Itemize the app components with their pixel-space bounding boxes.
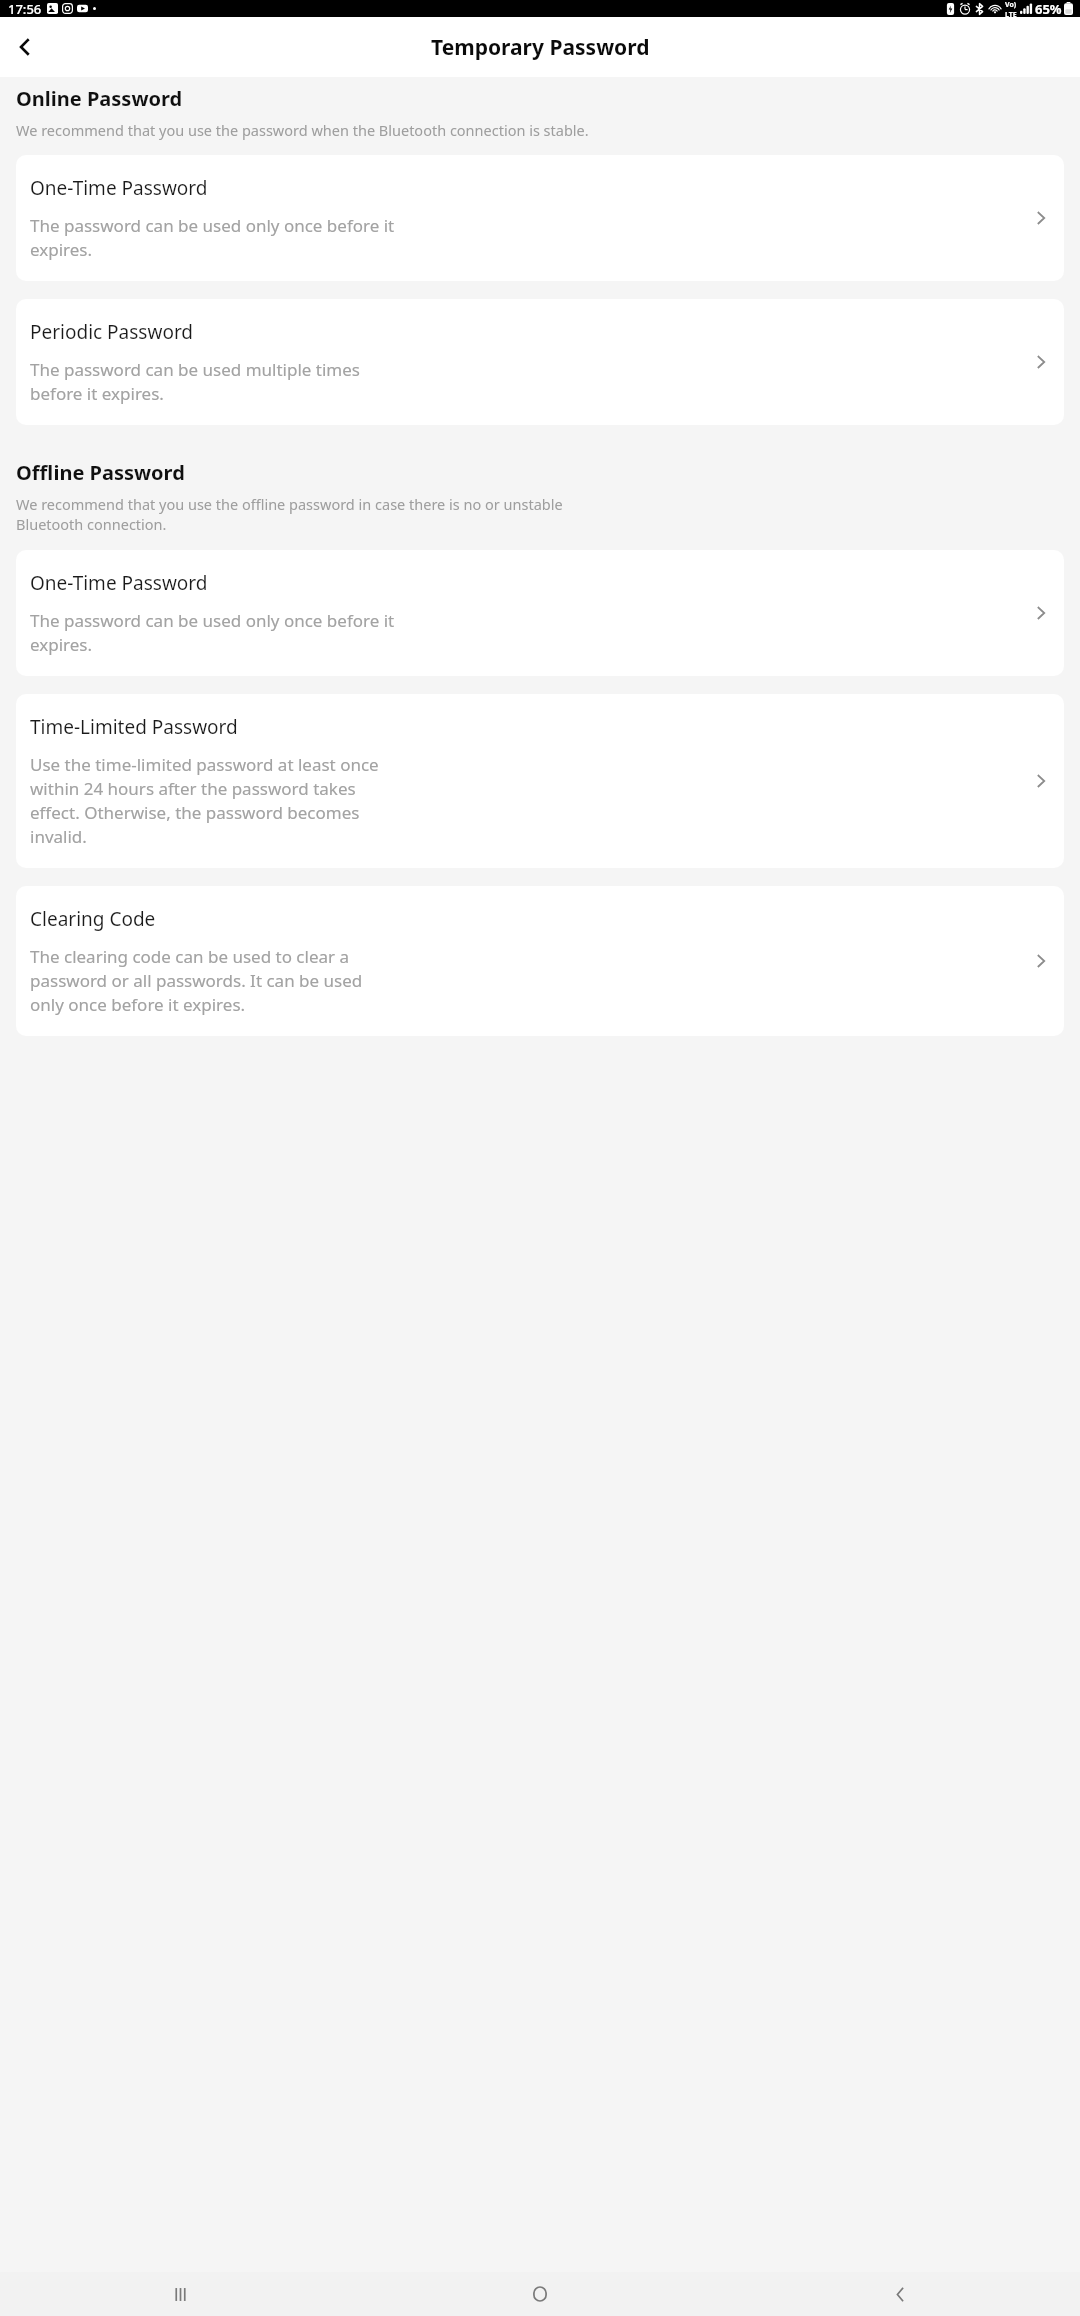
staticText: LTE	[1005, 10, 1017, 17]
button[interactable]: Recent apps	[152, 2272, 208, 2316]
button[interactable]: Back	[872, 2272, 928, 2316]
staticText: One-Time Password	[30, 570, 208, 596]
staticText: Time-Limited Password	[30, 714, 238, 740]
button[interactable]: One-Time Password	[16, 550, 1064, 676]
staticText: 17:56	[8, 0, 42, 17]
staticText: 65%	[1035, 0, 1062, 17]
staticText: Vo)	[1005, 0, 1017, 10]
staticText: Online Password	[16, 85, 183, 112]
staticText: We recommend that you use the offline pa…	[16, 494, 563, 534]
button[interactable]: Time-Limited Password	[16, 694, 1064, 868]
staticText: The clearing code can be used to clear a…	[30, 945, 363, 1016]
button[interactable]: Clearing Code	[16, 886, 1064, 1036]
staticText: The password can be used only once befor…	[30, 214, 395, 261]
staticText: Offline Password	[16, 459, 185, 486]
staticText: The password can be used only once befor…	[30, 609, 395, 656]
staticText: Periodic Password	[30, 319, 194, 345]
staticText: One-Time Password	[30, 175, 208, 201]
button[interactable]: Back	[5, 27, 45, 67]
staticText: Temporary Password	[431, 33, 650, 62]
button[interactable]: Periodic Password	[16, 299, 1064, 425]
staticText: Clearing Code	[30, 906, 156, 932]
staticText: The password can be used multiple times …	[30, 358, 360, 405]
button[interactable]: One-Time Password	[16, 155, 1064, 281]
staticText: We recommend that you use the password w…	[16, 120, 589, 140]
staticText: Use the time-limited password at least o…	[30, 753, 379, 848]
button[interactable]: Home	[512, 2272, 568, 2316]
